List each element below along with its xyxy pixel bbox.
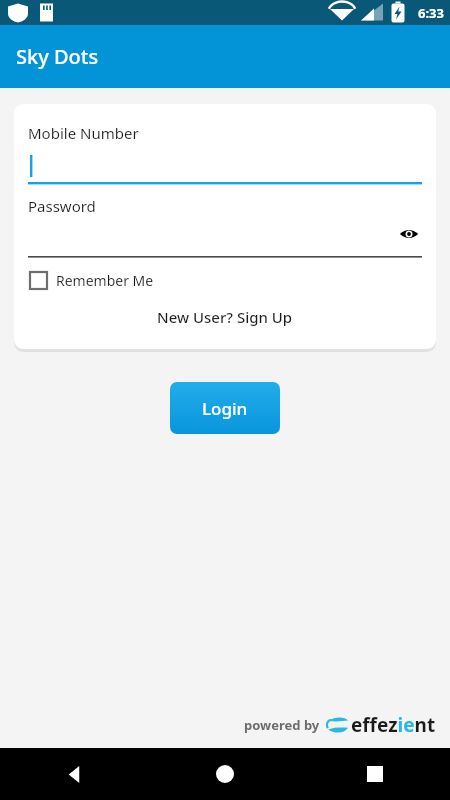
staticText: Remember Me — [56, 271, 154, 290]
button[interactable]: Login — [170, 382, 280, 434]
staticText: Mobile Number — [28, 123, 139, 143]
button[interactable]: Back — [0, 748, 150, 800]
staticText: Password — [28, 196, 96, 216]
button[interactable]: Remember Me — [28, 268, 156, 293]
staticText: powered by — [244, 716, 320, 734]
staticText: Login — [202, 397, 248, 420]
button[interactable]: Show password — [28, 216, 422, 258]
staticText: 6:33 — [418, 4, 444, 22]
button[interactable]: Home — [150, 748, 300, 800]
button[interactable]: Recent apps — [300, 748, 450, 800]
staticText: effezient — [351, 712, 436, 738]
button[interactable] — [28, 143, 422, 185]
button[interactable]: New User? Sign Up — [153, 303, 297, 331]
staticText: Sky Dots — [16, 43, 99, 70]
button[interactable]: Show password — [396, 221, 422, 247]
